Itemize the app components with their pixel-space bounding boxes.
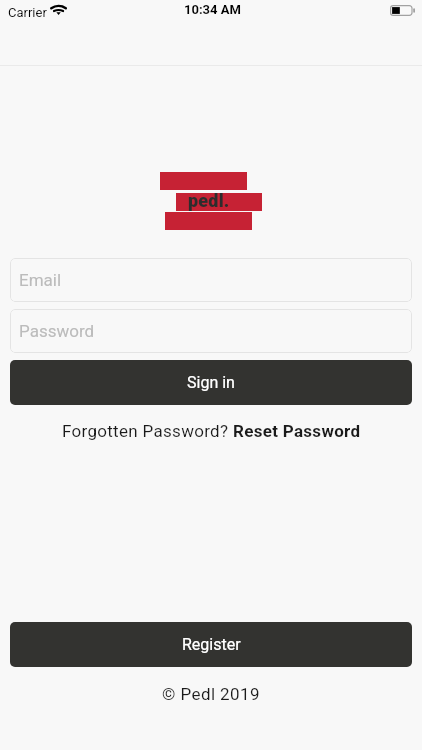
staticText: 10:34 AM [184, 2, 241, 17]
staticText: Carrier [8, 5, 47, 20]
staticText: pedl. [188, 190, 230, 211]
staticText: Password [19, 321, 95, 341]
button[interactable]: Register [10, 622, 412, 667]
staticText: Forgotten Password? [62, 421, 233, 441]
button[interactable]: Sign in [10, 360, 412, 405]
staticText: Register [182, 635, 241, 654]
other: Wi-Fi signal [51, 4, 67, 18]
button[interactable]: Reset Password [233, 421, 361, 441]
staticText: Email [19, 270, 62, 290]
button[interactable]: Password [10, 309, 412, 353]
staticText: Sign in [187, 373, 235, 392]
other: Battery [390, 5, 415, 16]
staticText: © Pedl 2019 [0, 684, 422, 704]
button[interactable]: Email [10, 258, 412, 302]
staticText: Reset Password [233, 421, 361, 441]
